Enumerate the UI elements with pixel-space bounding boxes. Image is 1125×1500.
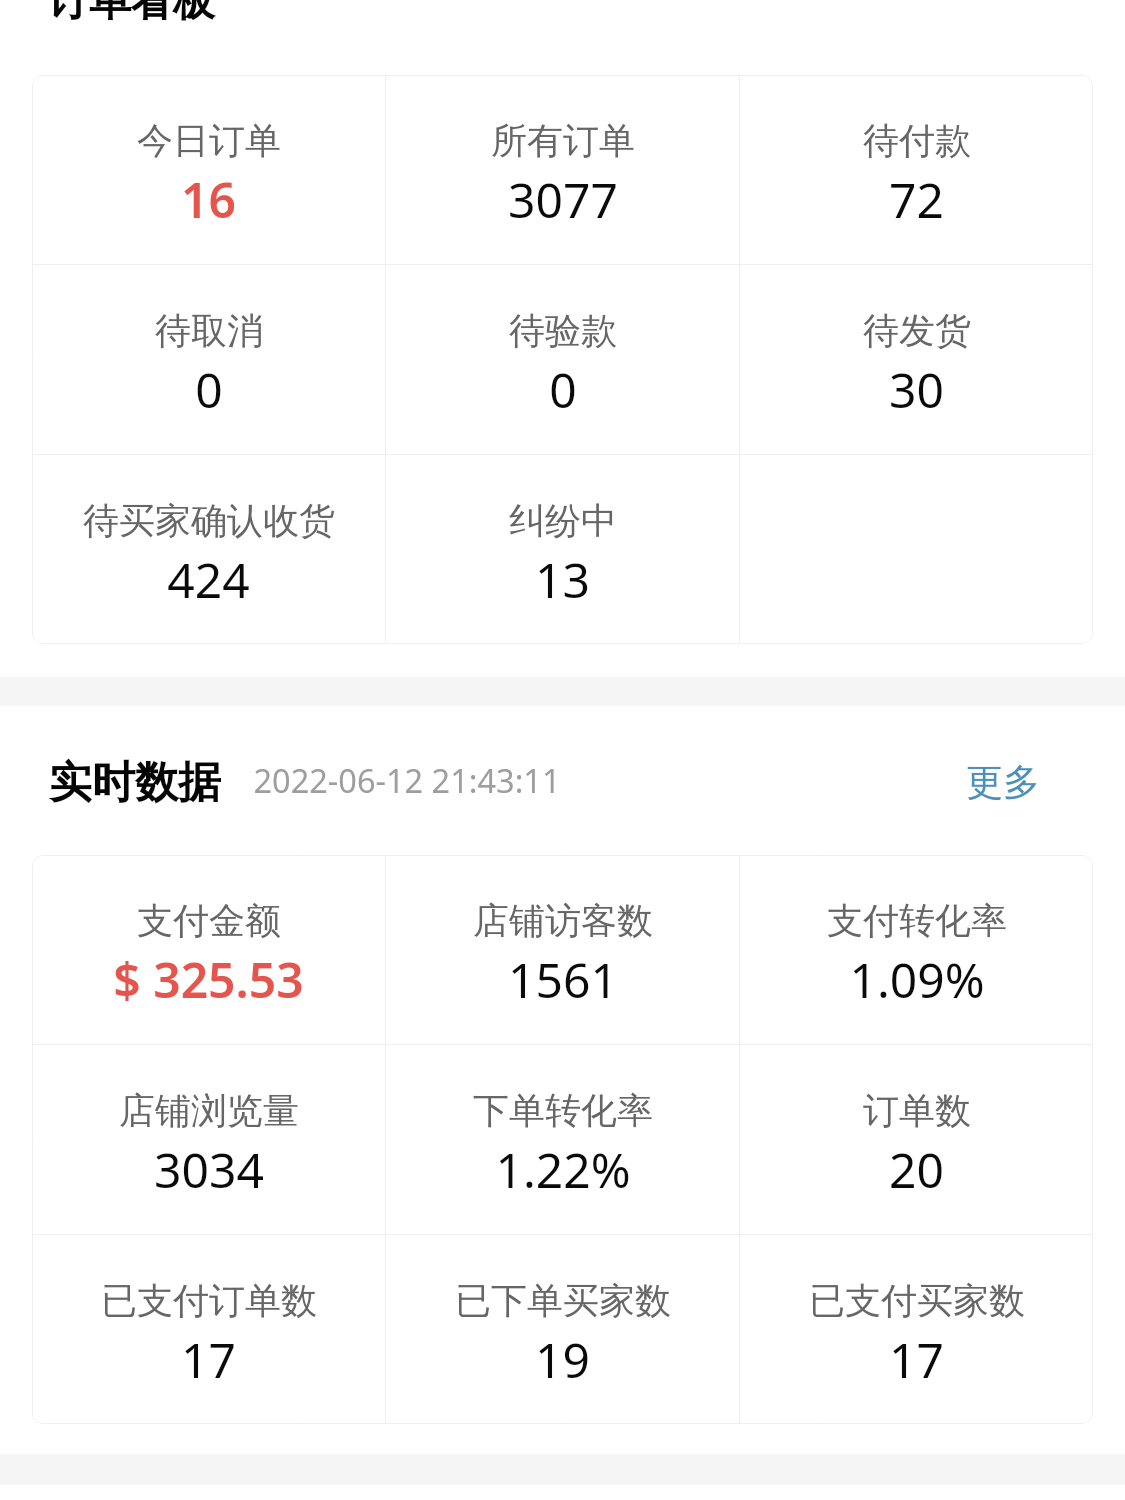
button[interactable]: 待买家确认收货 [32,455,385,644]
staticText: 实时数据 [49,756,221,809]
button[interactable]: 所有订单 [386,75,739,264]
button[interactable]: 已支付订单数 [32,1235,385,1424]
staticText: 已下单买家数 [455,1278,671,1323]
staticText: 16 [181,167,236,232]
button[interactable]: 订单数 [740,1045,1093,1234]
staticText: 订单看板 [47,0,215,28]
staticText: 待买家确认收货 [83,498,335,543]
staticText: 店铺浏览量 [119,1088,299,1133]
button[interactable]: 待付款 [740,75,1093,264]
staticText: 待付款 [863,118,971,163]
staticText: 纠纷中 [509,498,617,543]
button[interactable]: 纠纷中 [386,455,739,644]
button[interactable]: 今日订单 [32,75,385,264]
staticText: 20 [889,1137,944,1202]
button[interactable]: 待取消 [32,265,385,454]
button[interactable]: 待发货 [740,265,1093,454]
staticText: 所有订单 [491,118,635,163]
staticText: 待取消 [155,308,263,353]
staticText: 424 [167,547,250,612]
staticText: 30 [889,357,944,422]
staticText: 13 [535,547,590,612]
button[interactable]: 待验款 [386,265,739,454]
staticText: 0 [549,357,577,422]
staticText: 下单转化率 [473,1088,653,1133]
button[interactable]: 店铺访客数 [386,855,739,1044]
button[interactable]: 更多 [943,756,1063,809]
staticText: 72 [889,167,944,232]
staticText: 3034 [154,1137,264,1202]
staticText: 19 [535,1327,590,1392]
button[interactable]: 下单转化率 [386,1045,739,1234]
staticText: 待验款 [509,308,617,353]
staticText: 已支付订单数 [101,1278,317,1323]
staticText: 今日订单 [137,118,281,163]
staticText: 支付金额 [137,898,281,943]
staticText: 3077 [508,167,618,232]
staticText: 订单数 [863,1088,971,1133]
staticText: 支付转化率 [827,898,1007,943]
staticText: 17 [889,1327,944,1392]
staticText: 1.22% [495,1137,631,1202]
staticText: 1.09% [849,947,985,1012]
staticText: 0 [195,357,223,422]
staticText: 已支付买家数 [809,1278,1025,1323]
staticText: 17 [181,1327,236,1392]
button[interactable]: 已下单买家数 [386,1235,739,1424]
staticText: 店铺访客数 [473,898,653,943]
button[interactable]: 店铺浏览量 [32,1045,385,1234]
staticText: $ 325.53 [113,947,304,1012]
staticText: 更多 [966,759,1040,806]
staticText: 1561 [508,947,618,1012]
staticText: 2022-06-12 21:43:11 [253,758,561,802]
button[interactable]: 支付转化率 [740,855,1093,1044]
button[interactable]: 支付金额 [32,855,385,1044]
button[interactable]: 已支付买家数 [740,1235,1093,1424]
staticText: 待发货 [863,308,971,353]
